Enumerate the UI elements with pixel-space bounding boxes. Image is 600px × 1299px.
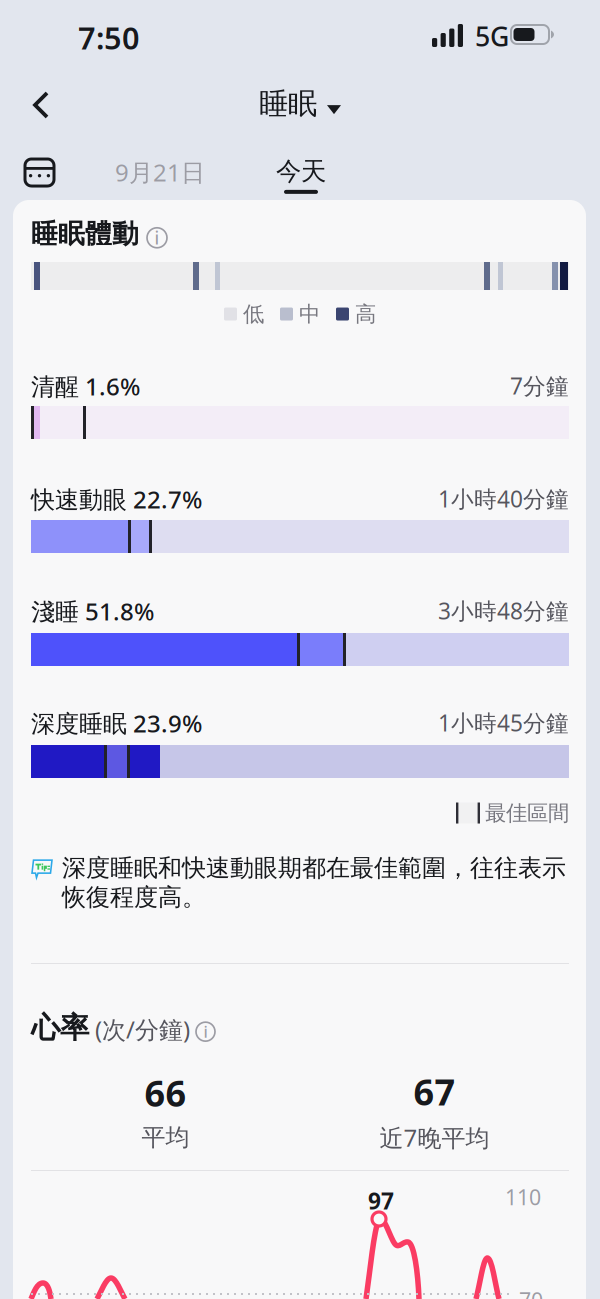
staticText: 7:50	[78, 17, 140, 58]
staticText: 低	[243, 301, 264, 327]
staticText: 67	[413, 1068, 455, 1115]
staticText: 9月21日	[115, 156, 205, 188]
staticText: 快速動眼 22.7%	[31, 483, 202, 515]
button[interactable]: 今天	[276, 156, 326, 194]
staticText: 今天	[276, 156, 326, 187]
staticText: 睡眠	[259, 86, 317, 122]
staticText: 清醒 1.6%	[31, 370, 140, 402]
staticText: 1小時40分鐘	[438, 483, 569, 514]
button[interactable]: 9月21日	[115, 156, 205, 188]
staticText: 高	[355, 301, 376, 327]
staticText: 睡眠體動	[31, 217, 139, 250]
staticText: 70	[519, 1286, 543, 1299]
staticText: i	[203, 1021, 207, 1042]
staticText: 7分鐘	[510, 370, 569, 401]
staticText: 平均	[141, 1123, 189, 1152]
button[interactable]: 睡眠	[259, 86, 341, 122]
staticText: 深度睡眠 23.9%	[31, 707, 202, 739]
staticText: 深度睡眠和快速動眼期都在最佳範圍，往往表示恢復程度高。	[62, 853, 566, 912]
staticText: 心率	[31, 1010, 89, 1046]
staticText: 110	[505, 1183, 541, 1211]
staticText: 中	[299, 301, 320, 327]
staticText: 97	[368, 1185, 394, 1216]
staticText: 1小時45分鐘	[438, 707, 569, 738]
staticText: 最佳區間	[485, 800, 569, 826]
button[interactable]: Calendar	[25, 159, 54, 186]
staticText: 淺睡 51.8%	[31, 595, 154, 627]
staticText: 66	[144, 1069, 186, 1117]
staticText: 近7晚平均	[379, 1121, 489, 1153]
staticText: 3小時48分鐘	[438, 595, 569, 626]
staticText: 5G	[475, 18, 509, 54]
button[interactable]: Back	[16, 80, 66, 130]
staticText: (次/分鐘)	[89, 1013, 196, 1045]
staticText: i	[154, 226, 159, 249]
